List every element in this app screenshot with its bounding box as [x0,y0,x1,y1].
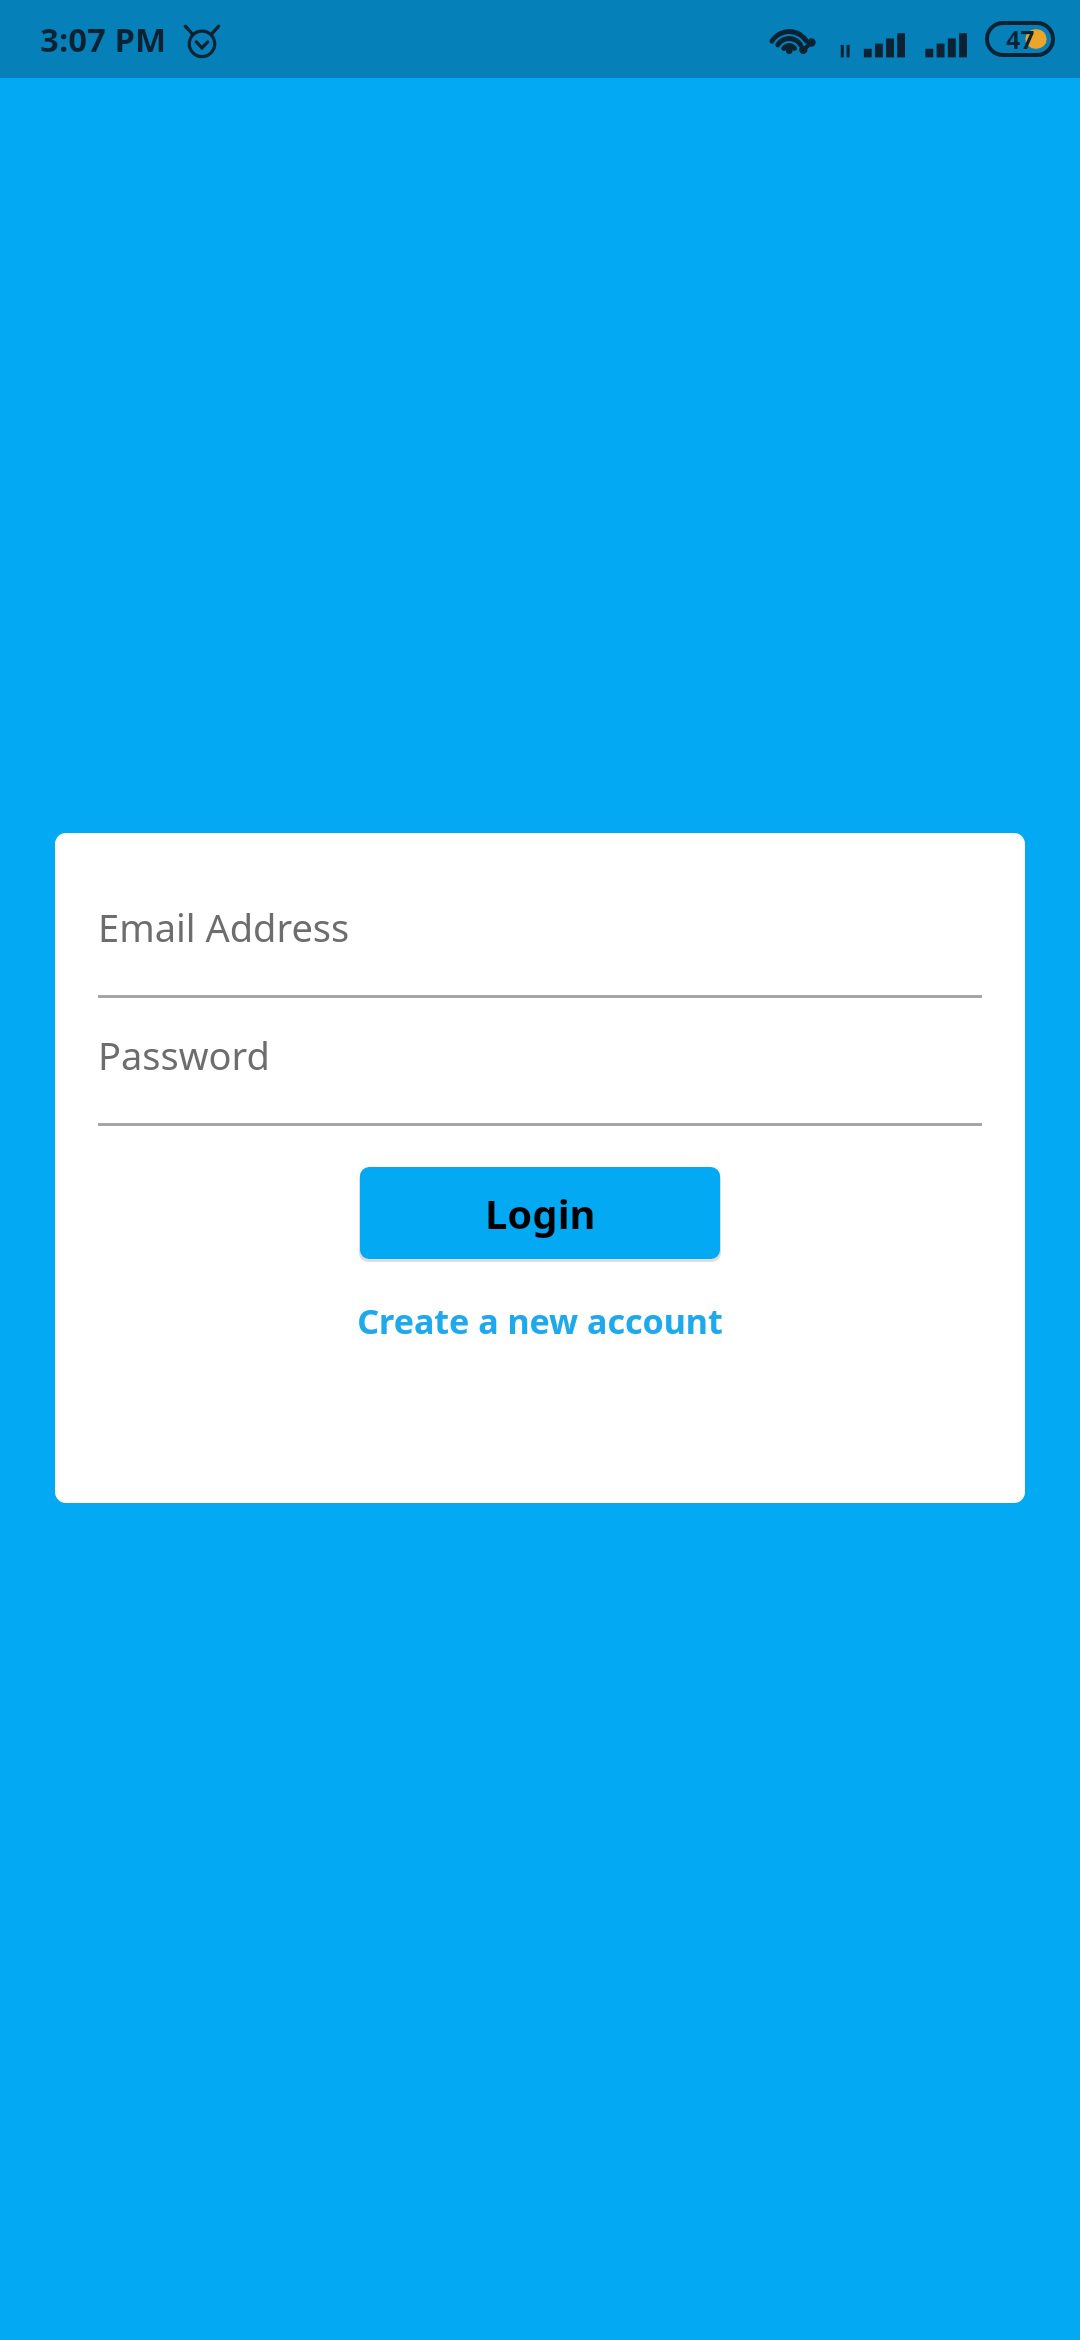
button[interactable]: Login [360,1167,720,1259]
staticText: 3:07 PM [40,17,167,62]
staticText: Password [98,1029,270,1081]
staticText: Login [485,1186,596,1240]
staticText: Email Address [98,901,350,953]
staticText: 47 [1006,22,1035,56]
button[interactable]: Password [98,1029,982,1126]
button[interactable]: Email Address [98,901,982,998]
staticText: Create a new account [357,1298,723,1344]
button[interactable]: Create a new account [98,1288,982,1354]
